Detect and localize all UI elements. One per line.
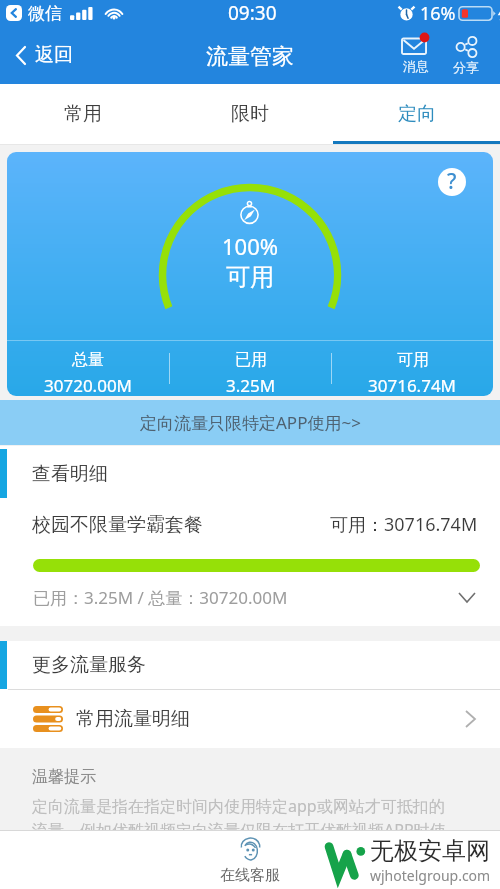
button[interactable]: 定向流量只限特定APP使用~> [0, 400, 500, 445]
staticText: 无极安卓网 [370, 836, 490, 866]
staticText: 30716.74M [368, 374, 457, 396]
staticText: 已用：3.25M / 总量：30720.00M [33, 586, 288, 609]
staticText: 可用 [397, 350, 429, 370]
button[interactable]: 总量 [7, 341, 169, 396]
staticText: 可用 [226, 262, 274, 292]
staticText: 定向 [398, 102, 436, 126]
staticText: 09:30 [228, 0, 277, 26]
staticText: 定向流量是指在指定时间内使用特定app或网站才可抵扣的流量。例如优酷视频定向流量… [32, 795, 458, 864]
staticText: 消息 [403, 58, 429, 74]
staticText: 可用：30716.74M [330, 512, 478, 537]
staticText: ? [447, 168, 457, 195]
button[interactable]: 返回 [0, 35, 83, 75]
button[interactable]: 定向 [333, 84, 500, 145]
staticText: 定向流量只限特定APP使用~> [140, 411, 361, 434]
staticText: 校园不限量学霸套餐 [32, 513, 203, 537]
staticText: 3.25M [226, 374, 276, 396]
staticText: 在线客服 [220, 866, 280, 885]
button[interactable]: 分享 [449, 32, 483, 79]
staticText: 限时 [231, 102, 269, 126]
button[interactable]: 常用 [0, 84, 166, 145]
button[interactable]: 限时 [166, 84, 333, 145]
staticText: 常用流量明细 [76, 707, 190, 731]
staticText: 更多流量服务 [32, 653, 146, 677]
button[interactable]: 常用流量明细 [0, 690, 500, 748]
staticText: 100% [222, 231, 279, 261]
staticText: 查看明细 [32, 462, 108, 486]
staticText: 温馨提示 [32, 767, 96, 787]
staticText: 微信 [28, 3, 62, 24]
staticText: 已用 [235, 350, 267, 370]
staticText: 分享 [453, 59, 479, 75]
button[interactable]: 消息 [398, 32, 433, 78]
button[interactable]: 可用 [332, 341, 493, 396]
button[interactable]: 在线客服 [220, 831, 280, 885]
staticText: 30720.00M [44, 374, 133, 396]
staticText: 流量管家 [206, 43, 294, 71]
staticText: 返回 [35, 43, 73, 67]
button[interactable]: 已用 [170, 341, 331, 396]
button[interactable]: Expand [454, 584, 480, 610]
staticText: 常用 [64, 102, 102, 126]
button[interactable]: Help [438, 168, 466, 196]
staticText: 16% [420, 1, 456, 26]
staticText: wjhotelgroup.com [370, 866, 491, 885]
staticText: 总量 [72, 350, 104, 370]
